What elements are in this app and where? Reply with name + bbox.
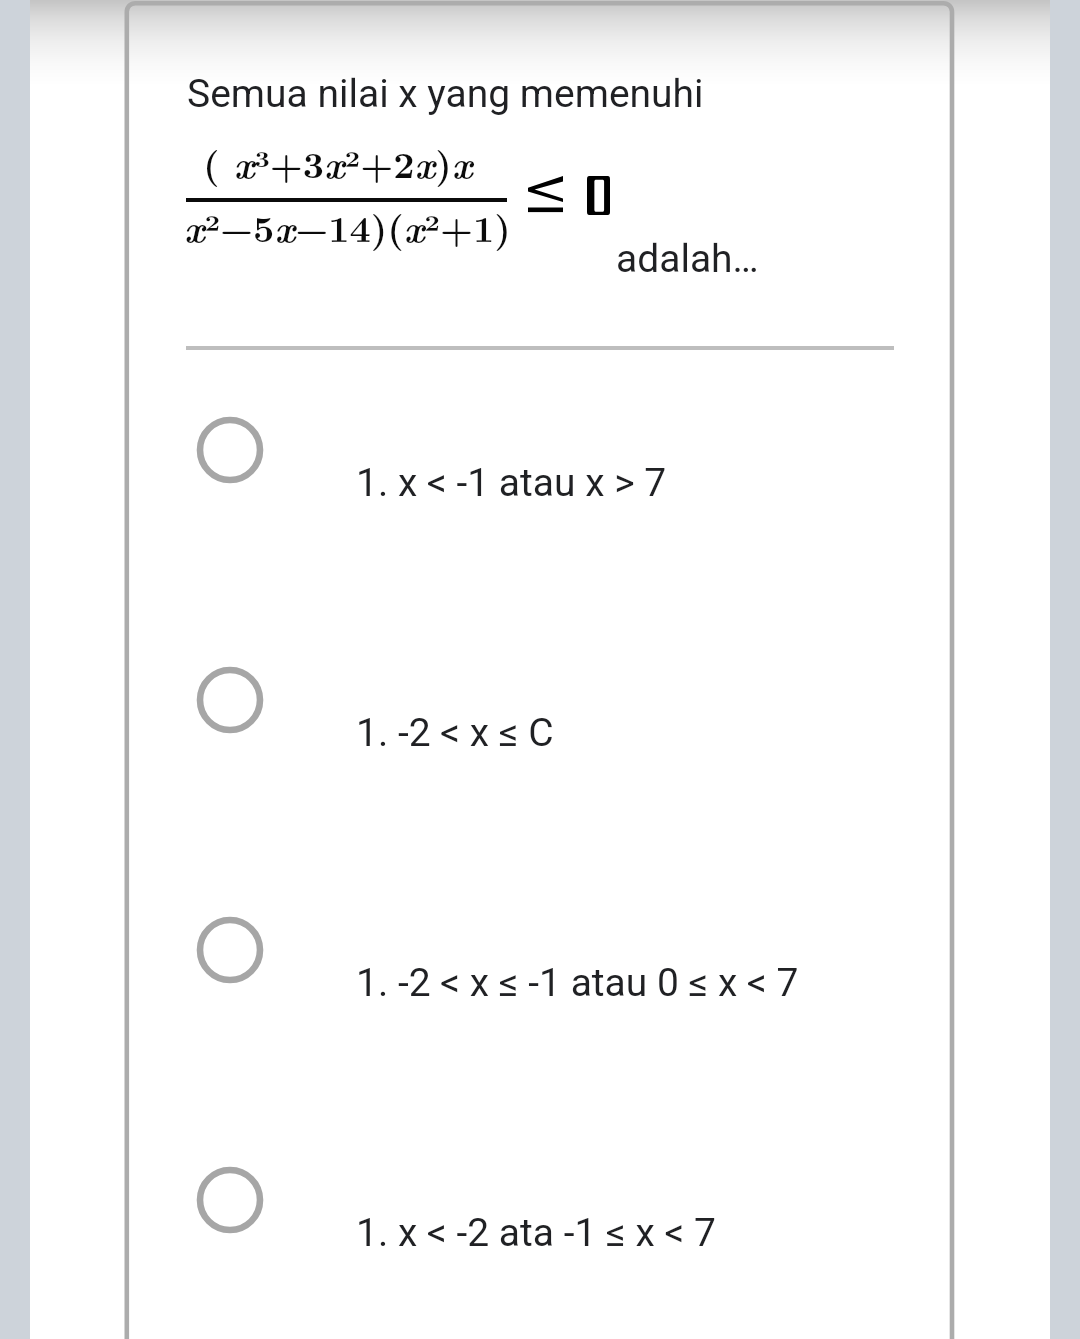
staticText: ( x³+3x²+2x)x — [203, 136, 473, 190]
staticText: 1. x < -1 atau x > 7 — [356, 460, 667, 506]
staticText: 1. x < -2 ata -1 ≤ x < 7 — [356, 1210, 716, 1256]
button[interactable]: 1. x < -1 atau x > 7 — [0, 368, 1080, 618]
other: less than or equal to — [528, 176, 564, 214]
staticText: x²−5x−14)(x²+1) — [184, 200, 511, 254]
button[interactable]: 1. -2 < x ≤ C — [0, 618, 1080, 868]
button[interactable]: 1. -2 < x ≤ -1 atau 0 ≤ x < 7 — [0, 868, 1080, 1118]
staticText: adalah… — [616, 236, 759, 282]
button[interactable]: 1. x < -2 ata -1 ≤ x < 7 — [0, 1118, 1080, 1339]
staticText: 1. -2 < x ≤ C — [356, 710, 554, 756]
other: zero — [586, 175, 613, 218]
staticText: 1. -2 < x ≤ -1 atau 0 ≤ x < 7 — [356, 960, 799, 1006]
staticText: Semua nilai x yang memenuhi — [187, 71, 704, 117]
